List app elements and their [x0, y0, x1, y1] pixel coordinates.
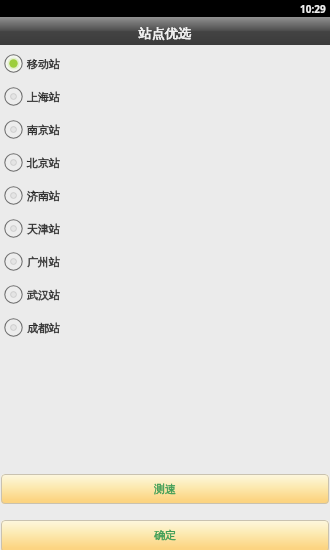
staticText: 广州站 [27, 255, 60, 269]
staticText: 测速 [154, 482, 176, 496]
staticText: 确定 [154, 528, 176, 542]
staticText: 济南站 [27, 189, 60, 203]
staticText: 天津站 [27, 222, 60, 236]
staticText: 站点优选 [139, 25, 191, 41]
button[interactable]: 移动站 [0, 47, 330, 80]
button[interactable]: 测速 [1, 474, 329, 504]
staticText: 站点优选 [139, 25, 191, 41]
button[interactable]: 广州站 [0, 245, 330, 278]
staticText: 移动站 [27, 57, 60, 71]
staticText: 广州站 [27, 255, 60, 269]
staticText: 10:29 [300, 2, 326, 16]
button[interactable]: 成都站 [0, 311, 330, 344]
staticText: 武汉站 [27, 288, 60, 302]
staticText: 济南站 [27, 189, 60, 203]
staticText: 北京站 [27, 156, 60, 170]
button[interactable]: 武汉站 [0, 278, 330, 311]
staticText: 北京站 [27, 156, 60, 170]
staticText: 确定 [154, 528, 176, 542]
button[interactable]: 确定 [1, 520, 329, 550]
staticText: 上海站 [27, 90, 60, 104]
staticText: 南京站 [27, 123, 60, 137]
staticText: 天津站 [27, 222, 60, 236]
button[interactable]: 上海站 [0, 80, 330, 113]
staticText: 测速 [154, 482, 176, 496]
button[interactable]: 天津站 [0, 212, 330, 245]
staticText: 南京站 [27, 123, 60, 137]
button[interactable]: 北京站 [0, 146, 330, 179]
staticText: 成都站 [27, 321, 60, 335]
staticText: 上海站 [27, 90, 60, 104]
staticText: 成都站 [27, 321, 60, 335]
button[interactable]: 南京站 [0, 113, 330, 146]
staticText: 移动站 [27, 57, 60, 71]
button[interactable]: 济南站 [0, 179, 330, 212]
staticText: 武汉站 [27, 288, 60, 302]
